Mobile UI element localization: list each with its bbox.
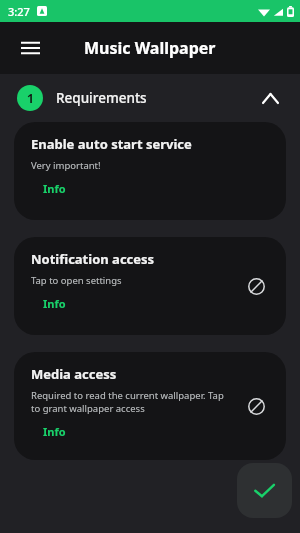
staticText: Required to read the current wallpaper. … [31, 389, 224, 415]
staticText: Music Wallpaper [84, 37, 216, 59]
staticText: Info [43, 181, 66, 196]
button[interactable]: Open navigation menu [10, 28, 50, 68]
button[interactable]: Confirm [237, 463, 292, 518]
button[interactable]: Info [43, 424, 66, 439]
staticText: 1 [27, 90, 34, 106]
staticText: Media access [31, 365, 117, 383]
staticText: Very important! [31, 159, 101, 172]
other: Not granted [244, 394, 268, 418]
button[interactable]: Enable auto start service [14, 122, 286, 220]
button[interactable]: Notification access [14, 237, 286, 335]
staticText: Tap to open settings [31, 274, 122, 287]
other: Collapse section [256, 84, 284, 112]
staticText: 3:27 [8, 4, 30, 19]
staticText: Notification access [31, 250, 155, 268]
other: Not granted [244, 274, 268, 298]
button[interactable]: Info [43, 296, 66, 311]
button[interactable]: 1 [0, 74, 300, 122]
staticText: Requirements [56, 89, 147, 107]
staticText: Enable auto start service [31, 135, 192, 153]
staticText: Info [43, 296, 66, 311]
button[interactable]: Media access [14, 352, 286, 460]
button[interactable]: Info [43, 181, 66, 196]
staticText: Info [43, 424, 66, 439]
